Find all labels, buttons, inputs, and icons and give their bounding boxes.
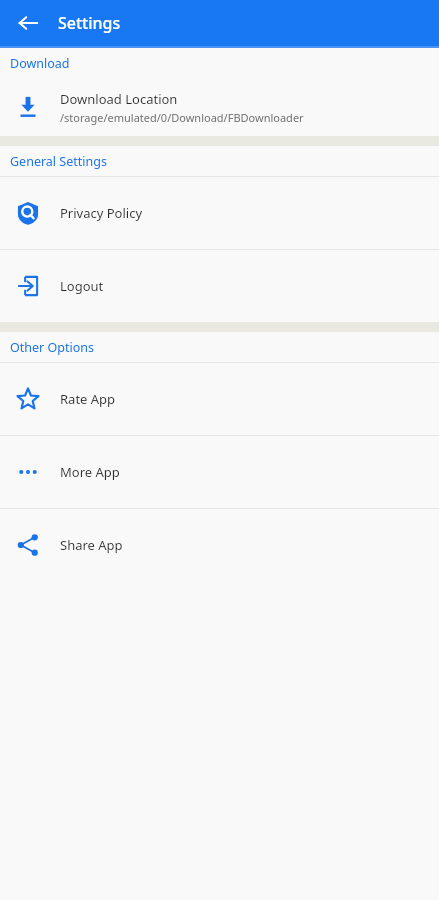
other: Privacy Policy: [10, 195, 46, 231]
other: More App: [10, 454, 46, 490]
staticText: /storage/emulated/0/Download/FBDownloade…: [60, 110, 304, 125]
staticText: General Settings: [10, 153, 107, 170]
button[interactable]: Rate App: [0, 363, 439, 435]
staticText: Rate App: [60, 390, 116, 408]
staticText: Download Location: [60, 90, 178, 108]
staticText: Download: [10, 55, 70, 72]
staticText: Settings: [58, 12, 121, 34]
button[interactable]: Privacy Policy: [0, 177, 439, 249]
staticText: More App: [60, 463, 120, 481]
other: Share App: [10, 527, 46, 563]
staticText: Logout: [60, 277, 104, 295]
other: Logout: [10, 268, 46, 304]
button[interactable]: Logout: [0, 250, 439, 322]
button[interactable]: Back: [8, 3, 48, 43]
button[interactable]: More App: [0, 436, 439, 508]
button[interactable]: Share App: [0, 509, 439, 581]
staticText: Share App: [60, 536, 123, 554]
staticText: Other Options: [10, 339, 94, 356]
other: Rate App: [10, 381, 46, 417]
button[interactable]: Download Location: [0, 78, 439, 136]
staticText: Privacy Policy: [60, 204, 143, 222]
